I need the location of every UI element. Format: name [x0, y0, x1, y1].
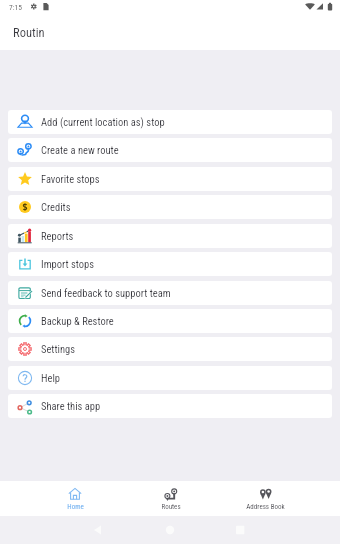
button[interactable]: Create a new route [8, 138, 332, 162]
button[interactable]: Address Book [218, 485, 313, 513]
staticText: Send feedback to support team [41, 287, 171, 299]
staticText: Address Book [246, 503, 285, 511]
button[interactable]: Backup & Restore [8, 309, 332, 333]
staticText: Routin [13, 25, 45, 40]
staticText: Add (current location as) stop [41, 116, 165, 128]
button[interactable]: Reports [8, 224, 332, 248]
staticText: 7:15 [9, 3, 22, 12]
staticText: Routes [161, 503, 181, 511]
staticText: Reports [41, 230, 74, 242]
staticText: Home [67, 503, 84, 511]
staticText: Help [41, 372, 61, 384]
button[interactable]: Routes [123, 485, 218, 513]
button[interactable]: Send feedback to support team [8, 281, 332, 305]
staticText: Favorite stops [41, 173, 100, 185]
button[interactable]: Help [8, 366, 332, 390]
staticText: Create a new route [41, 144, 119, 156]
staticText: Share this app [41, 400, 101, 412]
button[interactable]: Share this app [8, 394, 332, 418]
staticText: Credits [41, 201, 71, 213]
button[interactable]: Add (current location as) stop [8, 110, 332, 134]
button[interactable]: Home [27, 485, 123, 513]
staticText: Import stops [41, 258, 94, 270]
button[interactable]: Credits [8, 195, 332, 219]
staticText: Settings [41, 343, 76, 355]
button[interactable]: Import stops [8, 252, 332, 276]
staticText: Backup & Restore [41, 315, 114, 327]
button[interactable]: Favorite stops [8, 167, 332, 191]
button[interactable]: Settings [8, 337, 332, 361]
